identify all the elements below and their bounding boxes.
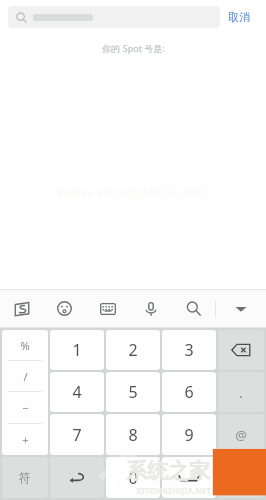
button[interactable]: Space <box>162 457 216 498</box>
button[interactable]: 取消 <box>220 6 258 28</box>
staticText: 取消 <box>228 10 250 24</box>
staticText: / <box>23 369 28 384</box>
button[interactable]: 3 <box>162 330 216 370</box>
staticText: 9 <box>184 424 194 446</box>
staticText: . <box>239 383 243 402</box>
button[interactable]: Backspace <box>218 330 264 370</box>
button[interactable]: / <box>2 361 48 391</box>
button[interactable]: 6 <box>162 372 216 412</box>
button[interactable]: % <box>2 330 48 360</box>
button[interactable]: Enter <box>218 457 264 498</box>
button[interactable]: @ <box>218 414 264 455</box>
button[interactable]: Search <box>172 289 215 328</box>
staticText: 你的 Spot 号是: <box>102 42 165 54</box>
button[interactable]: Voice input <box>129 289 172 328</box>
staticText: 6 <box>184 381 194 403</box>
button[interactable]: 9 <box>162 414 216 455</box>
button[interactable]: − <box>2 392 48 423</box>
staticText: 0 <box>128 467 138 489</box>
button[interactable]: 1 <box>50 330 104 370</box>
button[interactable]: Emoji <box>43 289 86 328</box>
button[interactable]: 0 <box>106 457 160 498</box>
staticText: 8 <box>128 424 138 446</box>
button[interactable]: 2 <box>106 330 160 370</box>
staticText: 5 <box>128 381 138 403</box>
staticText: 1 <box>72 339 82 361</box>
button[interactable]: Keyboard <box>86 289 129 328</box>
button[interactable]: Hide keyboard <box>216 289 266 328</box>
button[interactable] <box>8 6 220 28</box>
staticText: 2 <box>128 339 138 361</box>
staticText: 符 <box>19 470 31 485</box>
staticText: 系统之家 <box>126 458 210 484</box>
button[interactable]: Return <box>50 457 104 498</box>
staticText: − <box>22 400 29 415</box>
staticText: 7 <box>72 424 82 446</box>
button[interactable]: 7 <box>50 414 104 455</box>
button[interactable]: 4 <box>50 372 104 412</box>
staticText: 4 <box>72 381 82 403</box>
button[interactable]: 8 <box>106 414 160 455</box>
button[interactable]: 符 <box>2 457 48 498</box>
button[interactable]: Sogou input <box>0 289 43 328</box>
button[interactable]: + <box>2 424 48 455</box>
button[interactable]: 5 <box>106 372 160 412</box>
staticText: 3 <box>184 339 194 361</box>
staticText: % <box>20 338 30 353</box>
staticText: + <box>22 432 29 447</box>
staticText: @ <box>235 426 247 444</box>
staticText: XITONGZHIJIA.NET <box>136 485 211 496</box>
